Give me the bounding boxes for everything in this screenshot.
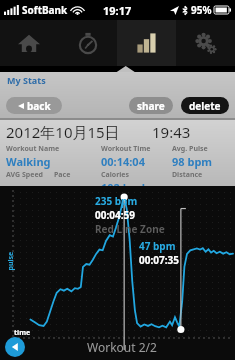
- staticText: Distance: [172, 170, 203, 180]
- staticText: 00:07:35: [139, 253, 179, 267]
- staticText: 19:17: [103, 3, 132, 18]
- staticText: 235 bpm: [95, 194, 138, 208]
- staticText: time: [14, 328, 31, 338]
- button[interactable]: Settings: [176, 20, 235, 66]
- staticText: Workout 2/2: [87, 339, 157, 355]
- staticText: Workout Time: [101, 144, 151, 154]
- staticText: 2012年10月15日: [6, 122, 120, 142]
- staticText: Calories: [101, 170, 130, 180]
- staticText: share: [137, 99, 165, 113]
- button[interactable]: Stats: [117, 20, 176, 66]
- staticText: 102 kcal: [101, 180, 146, 186]
- button[interactable]: back: [6, 97, 62, 114]
- staticText: SoftBank: [22, 3, 68, 17]
- button[interactable]: Stopwatch: [58, 20, 117, 66]
- button[interactable]: Previous workout: [5, 337, 25, 357]
- staticText: delete: [189, 99, 221, 113]
- staticText: back: [27, 99, 51, 113]
- staticText: 00:14:04: [101, 154, 145, 169]
- staticText: Avg. Pulse: [172, 144, 208, 154]
- button[interactable]: delete: [181, 97, 229, 114]
- staticText: pulse: [5, 251, 15, 270]
- staticText: 47 bpm: [139, 239, 176, 253]
- staticText: Workout Name: [6, 144, 60, 154]
- staticText: Red Line Zone: [95, 222, 165, 236]
- staticText: My Stats: [7, 74, 46, 86]
- staticText: 98 bpm: [172, 154, 213, 169]
- staticText: AVG Speed: [6, 170, 43, 180]
- staticText: Walking: [6, 154, 51, 169]
- staticText: 19:43: [152, 122, 191, 142]
- staticText: Pace: [54, 170, 71, 180]
- staticText: 00:04:59: [95, 208, 135, 222]
- button[interactable]: Home: [0, 20, 58, 66]
- button[interactable]: share: [129, 97, 173, 114]
- staticText: 95%: [191, 3, 212, 17]
